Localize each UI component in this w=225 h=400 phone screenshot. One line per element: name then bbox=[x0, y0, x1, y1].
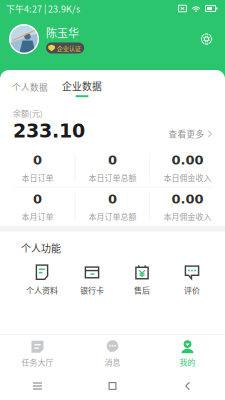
staticText: 个人资料 bbox=[26, 284, 58, 296]
button[interactable]: 售后 bbox=[117, 264, 167, 296]
button[interactable]: Home bbox=[75, 372, 150, 400]
staticText: 0.00 bbox=[171, 191, 203, 206]
button[interactable]: 企业数据 bbox=[62, 79, 102, 97]
staticText: 查看更多 bbox=[169, 128, 205, 140]
staticText: 0 bbox=[108, 191, 117, 206]
button[interactable]: Settings bbox=[199, 31, 214, 46]
button[interactable]: 银行卡 bbox=[67, 264, 117, 296]
staticText: 本月订单总额 bbox=[88, 210, 136, 222]
button[interactable]: Recents bbox=[0, 372, 75, 400]
staticText: 个人功能 bbox=[21, 241, 61, 255]
button[interactable]: Back bbox=[150, 372, 225, 400]
staticText: 消息 bbox=[104, 356, 120, 368]
button[interactable]: 我的 bbox=[150, 339, 225, 369]
staticText: 本日订单总额 bbox=[88, 172, 136, 183]
staticText: 任务大厅 bbox=[21, 356, 53, 368]
staticText: 余额(元) bbox=[13, 107, 43, 119]
button[interactable]: 评价 bbox=[167, 264, 217, 296]
staticText: 银行卡 bbox=[80, 284, 104, 296]
staticText: 本日佣金收入 bbox=[163, 172, 211, 183]
staticText: 0 bbox=[33, 152, 42, 168]
button[interactable]: 个人资料 bbox=[17, 264, 67, 296]
staticText: 企业数据 bbox=[62, 79, 102, 93]
staticText: 本日订单 bbox=[21, 172, 53, 183]
staticText: 个人数据 bbox=[12, 81, 48, 93]
button[interactable]: 查看更多 bbox=[169, 122, 212, 140]
staticText: 陈玉华 bbox=[46, 24, 79, 40]
staticText: 售后 bbox=[134, 284, 150, 296]
staticText: 233.10 bbox=[13, 120, 85, 142]
staticText: 本月佣金收入 bbox=[163, 210, 211, 222]
staticText: 企业认证 bbox=[57, 43, 81, 52]
button[interactable]: 任务大厅 bbox=[0, 339, 75, 369]
staticText: 评价 bbox=[184, 284, 200, 296]
staticText: 下午4:27 | 23.9K/s bbox=[6, 2, 80, 15]
staticText: 0.00 bbox=[171, 152, 203, 168]
staticText: 本月订单 bbox=[21, 210, 53, 222]
button[interactable]: 消息 bbox=[75, 339, 150, 369]
staticText: 我的 bbox=[179, 356, 195, 368]
staticText: 0 bbox=[33, 191, 42, 206]
staticText: 0 bbox=[108, 152, 117, 168]
button[interactable]: 个人数据 bbox=[12, 81, 48, 97]
